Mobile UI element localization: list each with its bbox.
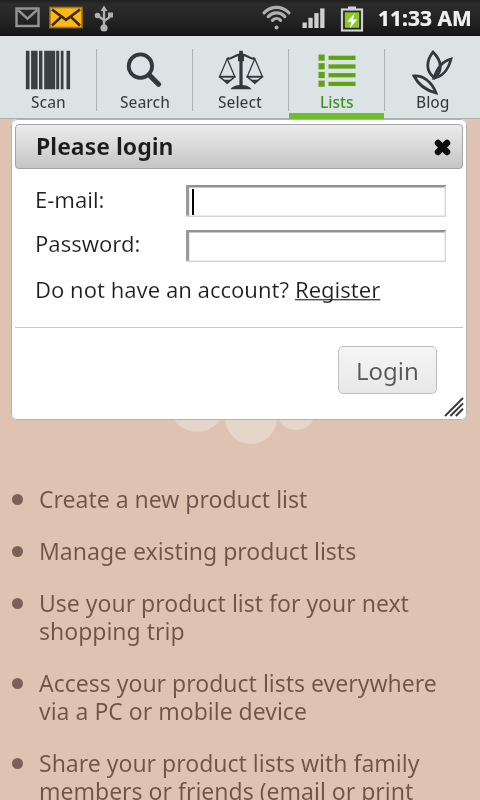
staticText: Please login (36, 130, 174, 161)
staticText: 11:33 AM (378, 4, 472, 33)
button[interactable]: Search (97, 36, 192, 119)
staticText: Password: (35, 228, 141, 258)
staticText: Login (356, 354, 419, 387)
staticText: Share your product lists with family mem… (39, 747, 420, 800)
staticText: Search (120, 91, 170, 112)
button[interactable]: Select (193, 36, 288, 119)
button[interactable]: Scan (0, 36, 96, 119)
button[interactable] (186, 185, 446, 217)
staticText: Create a new product list (39, 483, 308, 514)
staticText: Use your product list for your next shop… (39, 587, 409, 646)
button[interactable] (186, 230, 446, 262)
staticText: Blog (416, 91, 450, 112)
staticText: Access your product lists everywhere via… (39, 667, 437, 726)
staticText: Lists (320, 91, 354, 112)
button[interactable]: Login (338, 346, 437, 394)
staticText: Scan (31, 91, 66, 112)
button[interactable]: Close dialog (427, 132, 457, 162)
staticText: Do not have an account? (35, 274, 295, 304)
staticText: Select (218, 91, 263, 112)
staticText: Manage existing product lists (39, 535, 357, 566)
staticText: E-mail: (35, 184, 105, 214)
button[interactable]: Blog (385, 36, 480, 119)
button[interactable]: Lists (289, 36, 384, 119)
button[interactable]: Register (295, 274, 381, 304)
